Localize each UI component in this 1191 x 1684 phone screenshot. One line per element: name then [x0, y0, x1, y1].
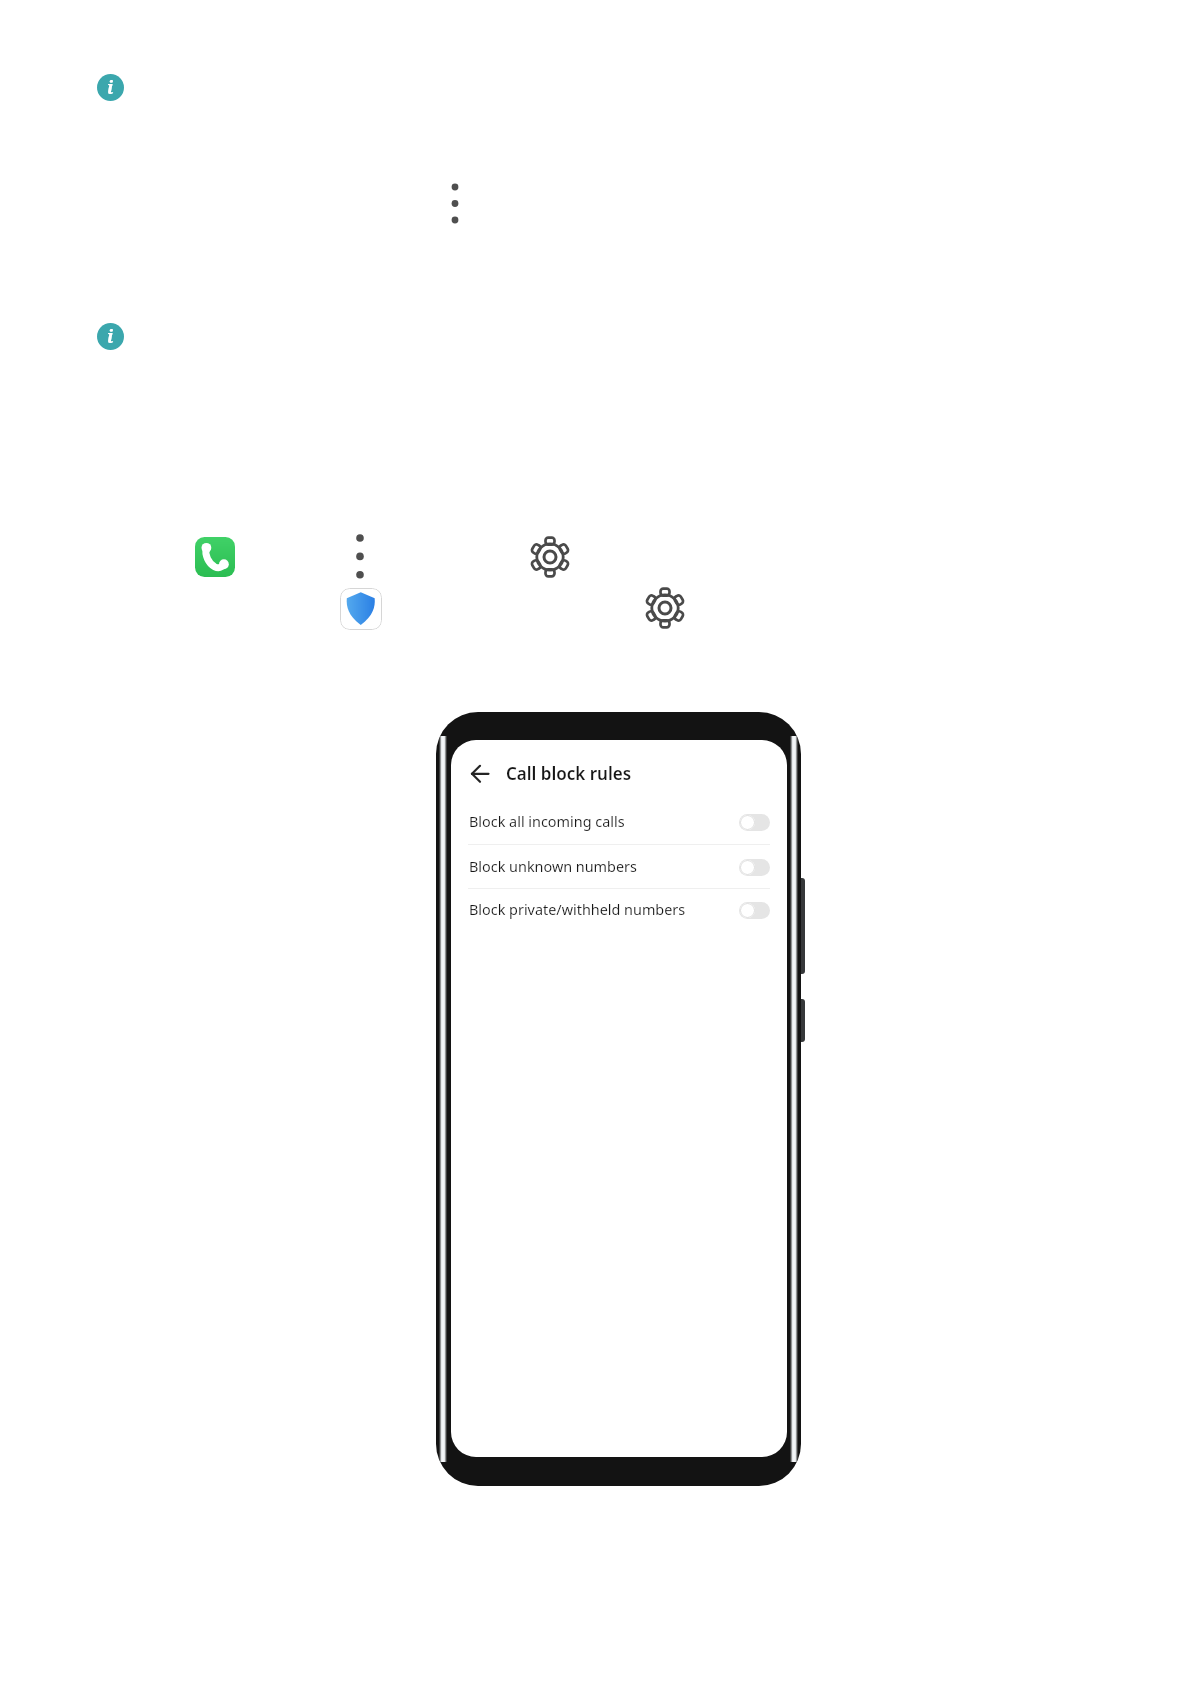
staticText: Block unknown numbers: [469, 857, 637, 877]
staticText: Block private/withheld numbers: [469, 900, 686, 920]
staticText: Call block rules: [506, 762, 632, 785]
staticText: Block all incoming calls: [469, 812, 625, 832]
staticText: i: [107, 324, 114, 349]
staticText: i: [107, 75, 114, 100]
